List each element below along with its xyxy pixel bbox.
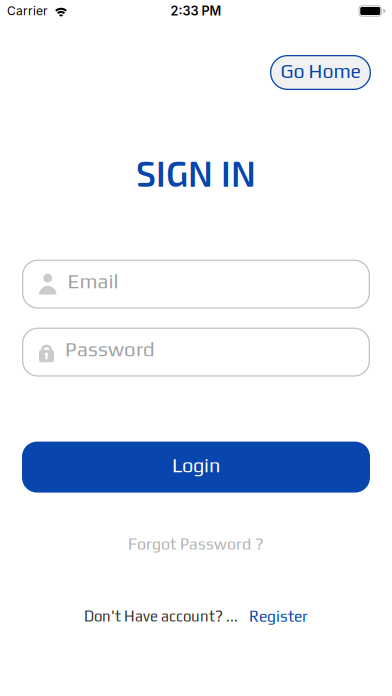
button[interactable]: Login	[22, 442, 370, 493]
button[interactable]: Email	[22, 260, 370, 309]
staticText: Register	[249, 607, 308, 625]
button[interactable]: Go Home	[270, 55, 371, 90]
staticText: Don't Have account? ...	[84, 608, 238, 625]
staticText: Password	[65, 337, 155, 361]
staticText: Email	[67, 269, 118, 293]
staticText: Carrier	[7, 4, 48, 18]
button[interactable]: Forgot Password ?	[128, 535, 264, 553]
staticText: Forgot Password ?	[128, 535, 264, 553]
staticText: SIGN IN	[136, 152, 256, 194]
staticText: 2:33 PM	[170, 3, 221, 19]
staticText: Login	[172, 453, 220, 477]
staticText: Go Home	[280, 60, 360, 82]
button[interactable]: Password	[22, 328, 370, 377]
button[interactable]: Register	[249, 607, 308, 625]
